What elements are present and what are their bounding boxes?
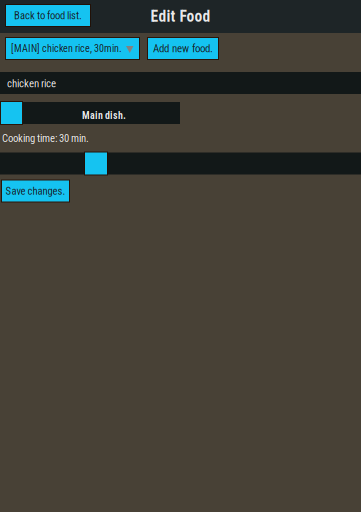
staticText: Main dish.: [82, 110, 126, 121]
button[interactable]: Cooking time: [0, 151, 361, 175]
staticText: Edit Food: [150, 7, 210, 26]
staticText: Back to food list.: [14, 9, 82, 22]
button[interactable]: [MAIN] chicken rice, 30min.: [5, 37, 140, 60]
button[interactable]: Main dish.: [0, 101, 180, 125]
button[interactable]: Back to food list.: [5, 4, 91, 27]
staticText: Cooking time: 30 min.: [2, 132, 89, 144]
button[interactable]: Save changes.: [1, 179, 70, 202]
staticText: chicken rice: [7, 77, 56, 90]
staticText: Add new food.: [153, 42, 213, 55]
staticText: Save changes.: [5, 185, 65, 197]
staticText: [MAIN] chicken rice, 30min.: [11, 43, 122, 54]
button[interactable]: Add new food.: [147, 37, 219, 60]
